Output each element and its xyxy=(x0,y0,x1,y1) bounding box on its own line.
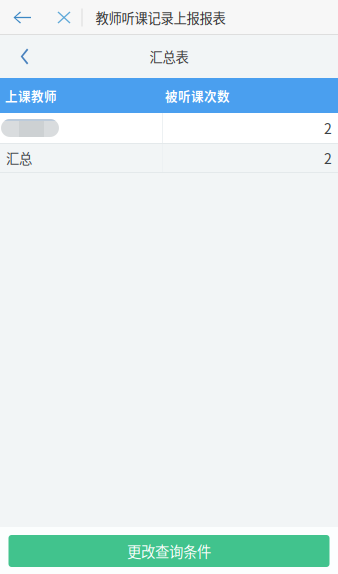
staticText: 汇总 xyxy=(6,148,32,168)
staticText: 更改查询条件 xyxy=(127,541,211,561)
staticText: 教师听课记录上报报表 xyxy=(95,8,225,27)
button[interactable]: 更改查询条件 xyxy=(8,535,329,567)
staticText: 2 xyxy=(324,148,332,168)
staticText: 2 xyxy=(324,118,332,138)
staticText: 上课教师 xyxy=(5,86,57,104)
button[interactable]: 后退 xyxy=(0,35,44,78)
button[interactable]: 返回 xyxy=(0,0,44,35)
staticText: 被听课次数 xyxy=(165,86,230,104)
button[interactable]: 关闭 xyxy=(44,0,78,35)
staticText: 汇总表 xyxy=(149,47,188,66)
